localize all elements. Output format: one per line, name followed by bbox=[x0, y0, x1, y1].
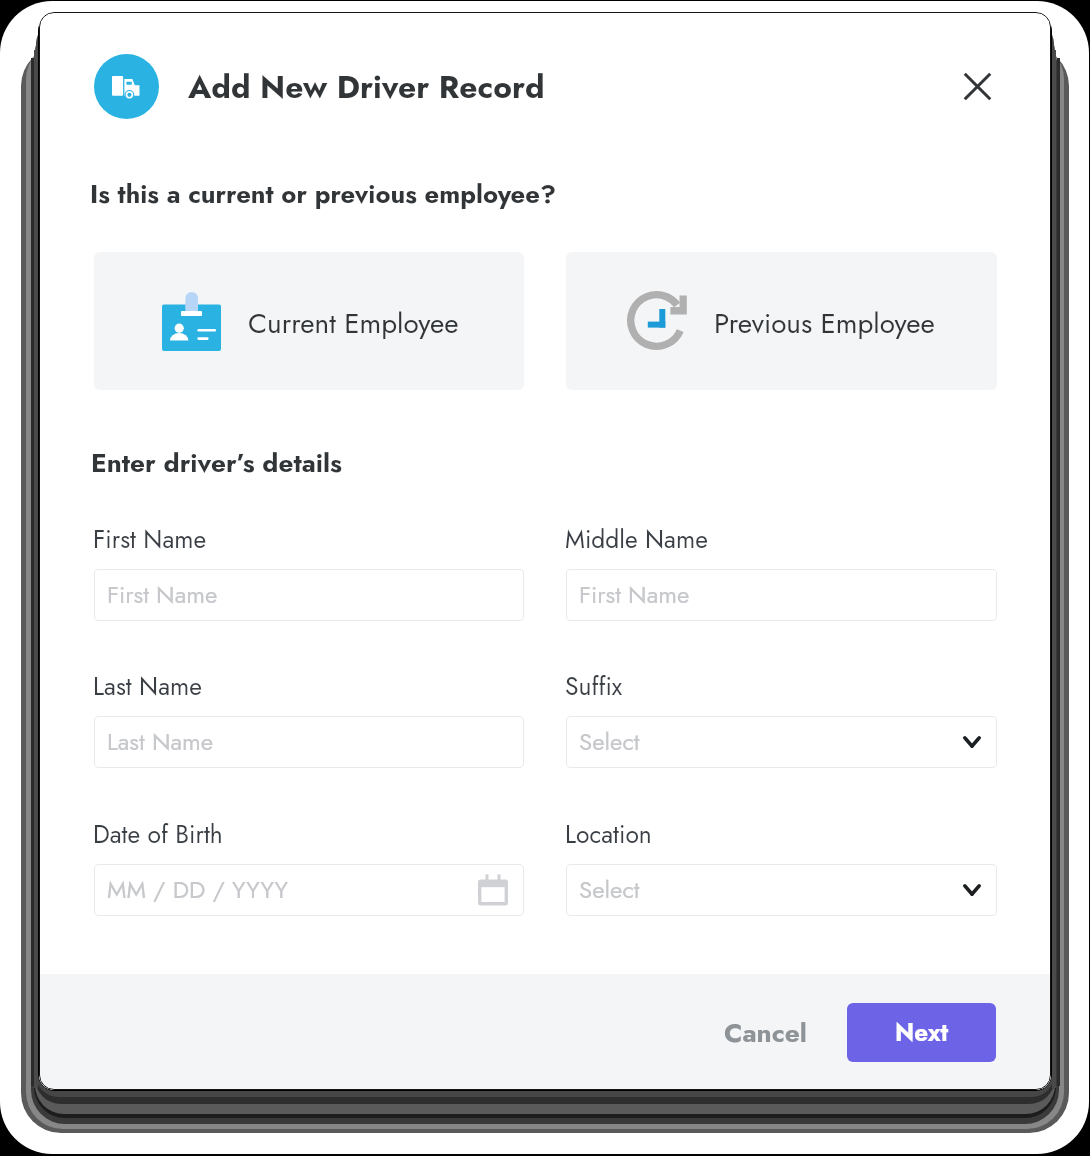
staticText: MM / DD / YYYY bbox=[107, 872, 289, 907]
staticText: Select bbox=[579, 872, 640, 907]
button[interactable]: First Name bbox=[94, 569, 524, 621]
button[interactable]: Previous Employee bbox=[566, 252, 997, 390]
staticText: Middle Name bbox=[565, 522, 708, 558]
staticText: Last Name bbox=[107, 724, 214, 759]
button[interactable]: Select bbox=[566, 864, 997, 916]
button[interactable]: First Name bbox=[566, 569, 997, 621]
staticText: Date of Birth bbox=[93, 817, 223, 853]
staticText: Cancel bbox=[724, 1014, 807, 1052]
button[interactable]: Last Name bbox=[94, 716, 524, 768]
staticText: First Name bbox=[579, 577, 690, 612]
staticText: First Name bbox=[93, 522, 207, 558]
button[interactable]: Cancel bbox=[700, 1003, 831, 1062]
button[interactable]: Current Employee bbox=[94, 252, 524, 390]
staticText: Is this a current or previous employee? bbox=[90, 176, 556, 213]
staticText: Previous Employee bbox=[714, 303, 935, 343]
button[interactable]: Select bbox=[566, 716, 997, 768]
button[interactable]: Close bbox=[953, 62, 1001, 110]
staticText: Next bbox=[895, 1015, 949, 1050]
staticText: Enter driver’s details bbox=[91, 444, 342, 482]
button[interactable]: Next bbox=[847, 1003, 996, 1062]
staticText: Select bbox=[579, 724, 640, 759]
staticText: Suffix bbox=[565, 669, 623, 705]
staticText: Current Employee bbox=[248, 303, 459, 343]
staticText: Add New Driver Record bbox=[188, 64, 545, 110]
staticText: Location bbox=[565, 817, 652, 853]
staticText: Last Name bbox=[93, 669, 202, 705]
button[interactable]: MM / DD / YYYY bbox=[94, 864, 524, 916]
staticText: First Name bbox=[107, 577, 218, 612]
